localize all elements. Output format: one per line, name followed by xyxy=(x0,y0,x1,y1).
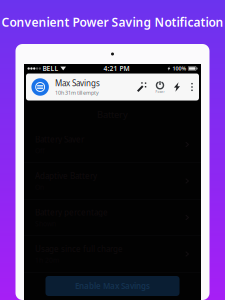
staticText: 10h 31m till empty xyxy=(55,89,99,96)
staticText: Enable Max Savings xyxy=(75,281,150,291)
staticText: Usage since full charge xyxy=(35,243,123,254)
staticText: Battery xyxy=(97,108,128,121)
staticText: Battery percentage xyxy=(35,207,108,218)
staticText: Max Savings xyxy=(55,78,100,88)
staticText: Adaptive Battery xyxy=(35,170,97,181)
staticText: Power xyxy=(155,90,164,94)
button[interactable]: Power saving mode xyxy=(151,73,169,101)
button[interactable]: Enable Max Savings xyxy=(45,276,179,296)
staticText: 4:21 PM xyxy=(103,64,129,73)
staticText: Convenient Power Saving Notification xyxy=(1,14,223,30)
staticText: 100% xyxy=(173,65,187,72)
button[interactable]: More options xyxy=(185,73,199,101)
button[interactable]: Charging xyxy=(169,73,185,101)
button[interactable]: Optimize battery xyxy=(133,73,151,101)
staticText: Battery Saver xyxy=(35,134,84,145)
staticText: BELL xyxy=(43,64,59,73)
